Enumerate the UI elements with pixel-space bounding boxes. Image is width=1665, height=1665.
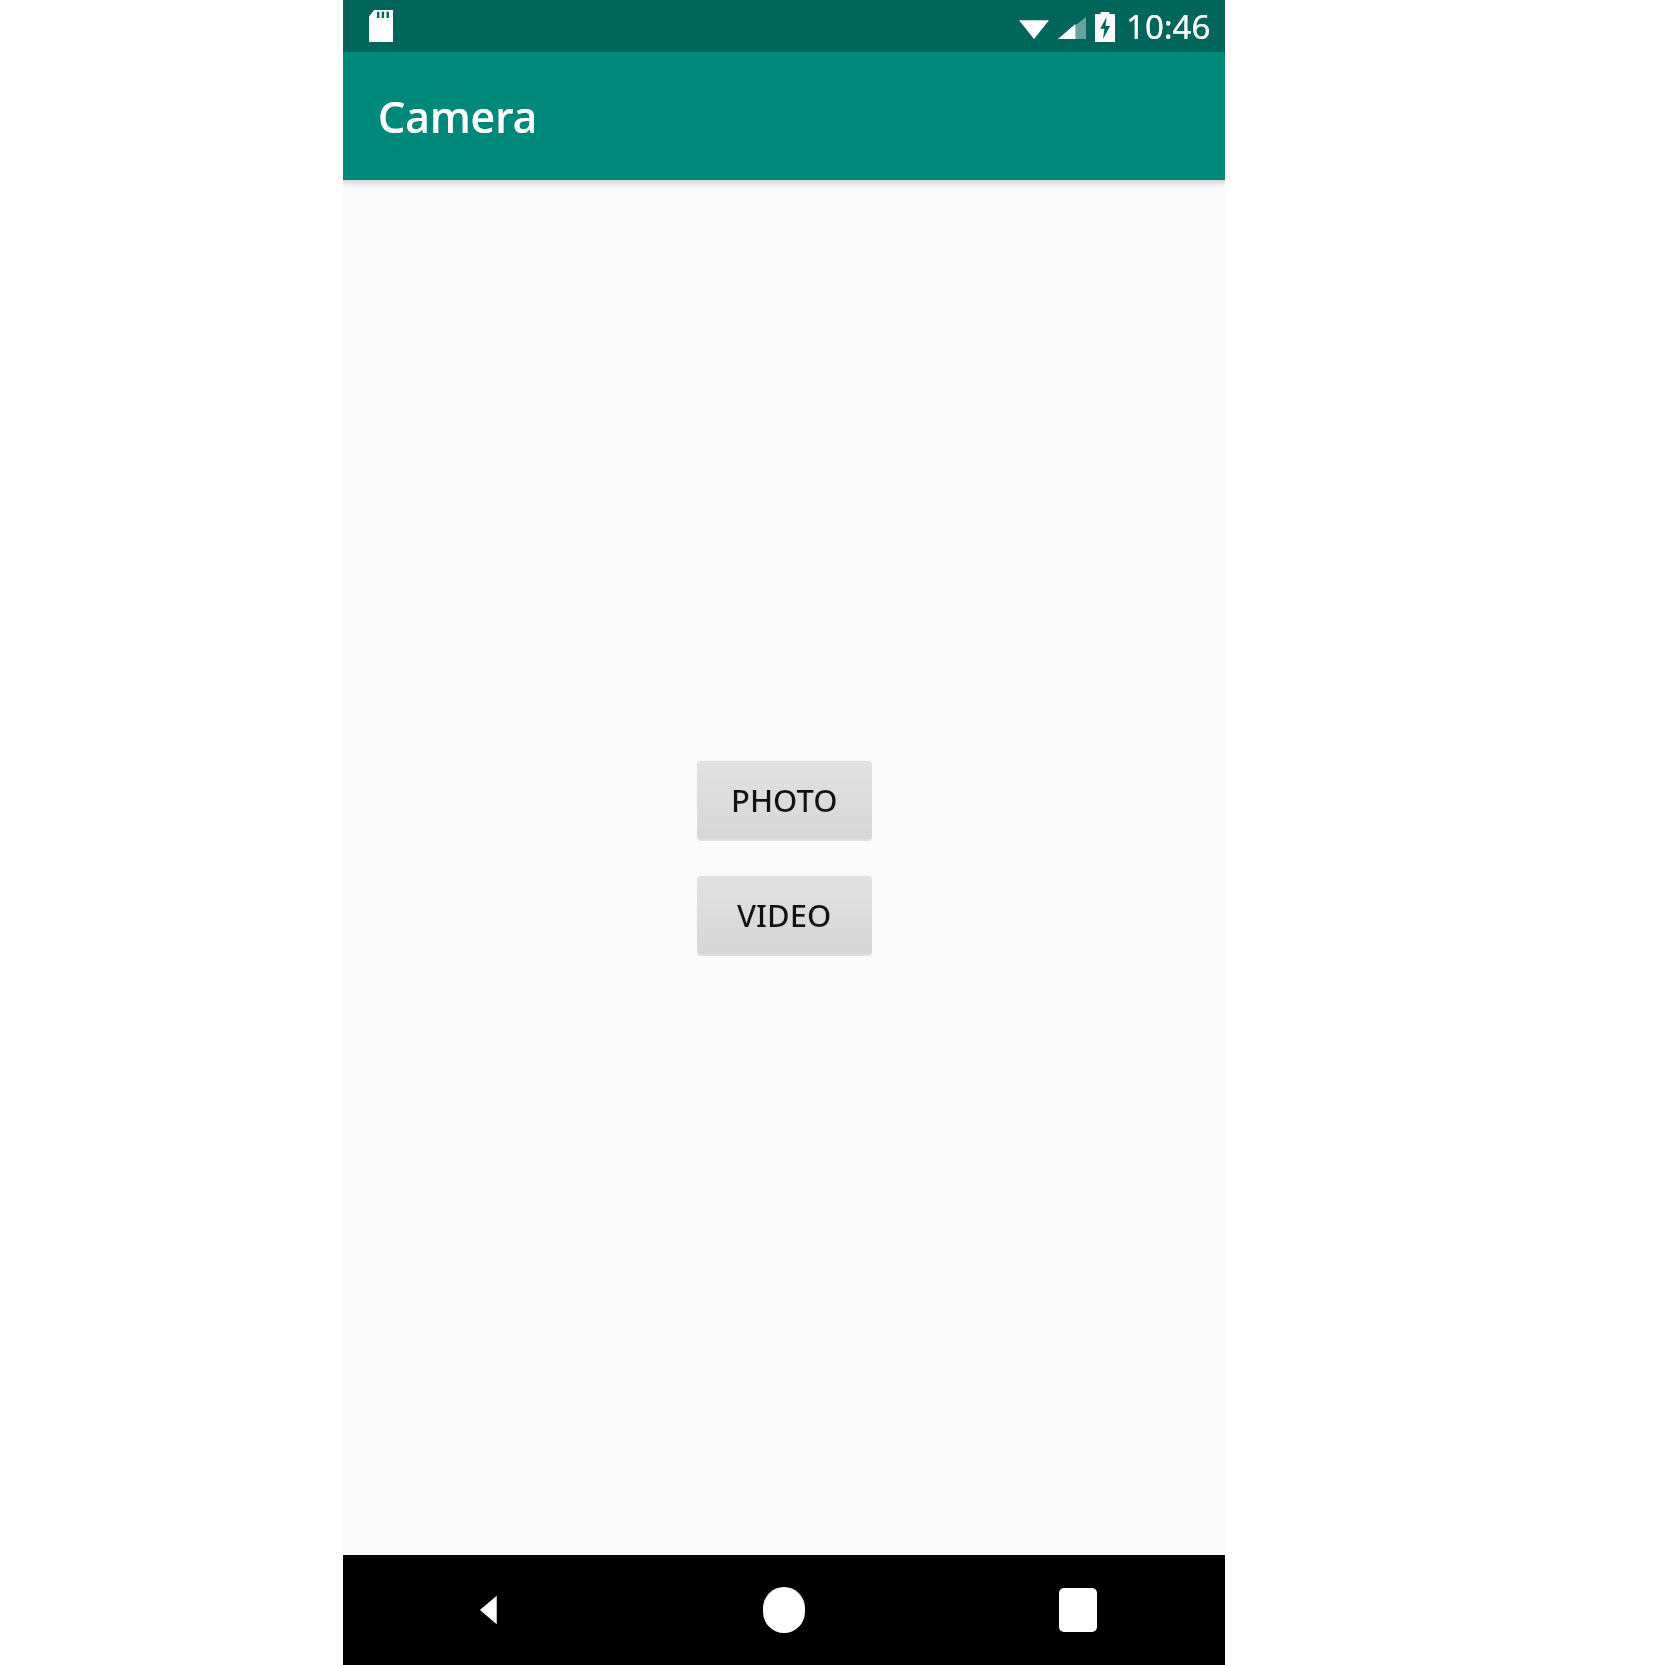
button[interactable]: VIDEO xyxy=(697,876,872,954)
staticText: 10:46 xyxy=(1126,4,1211,49)
button[interactable]: Back xyxy=(343,1555,637,1665)
button[interactable]: Recent apps xyxy=(931,1555,1225,1665)
button[interactable]: PHOTO xyxy=(697,761,872,839)
staticText: VIDEO xyxy=(737,894,832,936)
staticText: Camera xyxy=(378,87,538,146)
button[interactable]: Home xyxy=(637,1555,931,1665)
staticText: PHOTO xyxy=(731,779,838,821)
